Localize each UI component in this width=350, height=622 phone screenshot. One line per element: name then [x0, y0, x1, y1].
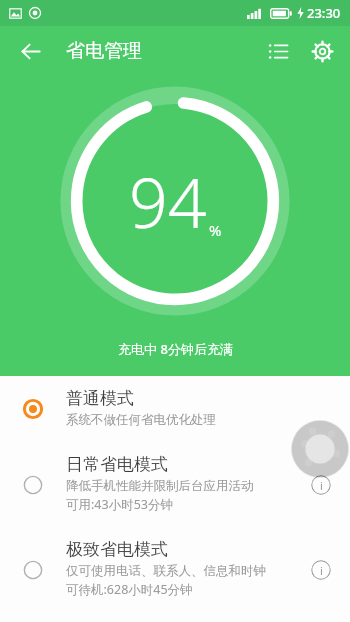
button[interactable]: Settings: [300, 29, 344, 73]
staticText: i: [320, 563, 323, 578]
button[interactable]: Back: [8, 29, 52, 73]
button[interactable]: 普通模式: [0, 376, 350, 442]
staticText: 省电管理: [66, 39, 142, 63]
button[interactable]: Info: [306, 555, 336, 585]
staticText: 23:30: [307, 4, 341, 22]
staticText: 系统不做任何省电优化处理: [66, 412, 216, 428]
staticText: 普通模式: [66, 388, 134, 409]
button[interactable]: 极致省电模式: [0, 527, 350, 612]
staticText: i: [320, 478, 323, 493]
staticText: 可用:43小时53分钟: [66, 496, 173, 513]
button[interactable]: Info: [306, 470, 336, 500]
staticText: 仅可使用电话、联系人、信息和时钟: [66, 563, 266, 579]
staticText: 极致省电模式: [66, 539, 168, 560]
staticText: %: [209, 220, 222, 240]
button[interactable]: 日常省电模式: [0, 442, 350, 527]
staticText: 日常省电模式: [66, 454, 168, 475]
staticText: 降低手机性能并限制后台应用活动: [66, 478, 254, 494]
button[interactable]: List: [256, 29, 300, 73]
button[interactable]: Assistive touch: [291, 420, 349, 478]
staticText: 94: [129, 155, 207, 248]
staticText: 可待机:628小时45分钟: [66, 581, 193, 598]
staticText: 充电中 8分钟后充满: [118, 340, 233, 358]
